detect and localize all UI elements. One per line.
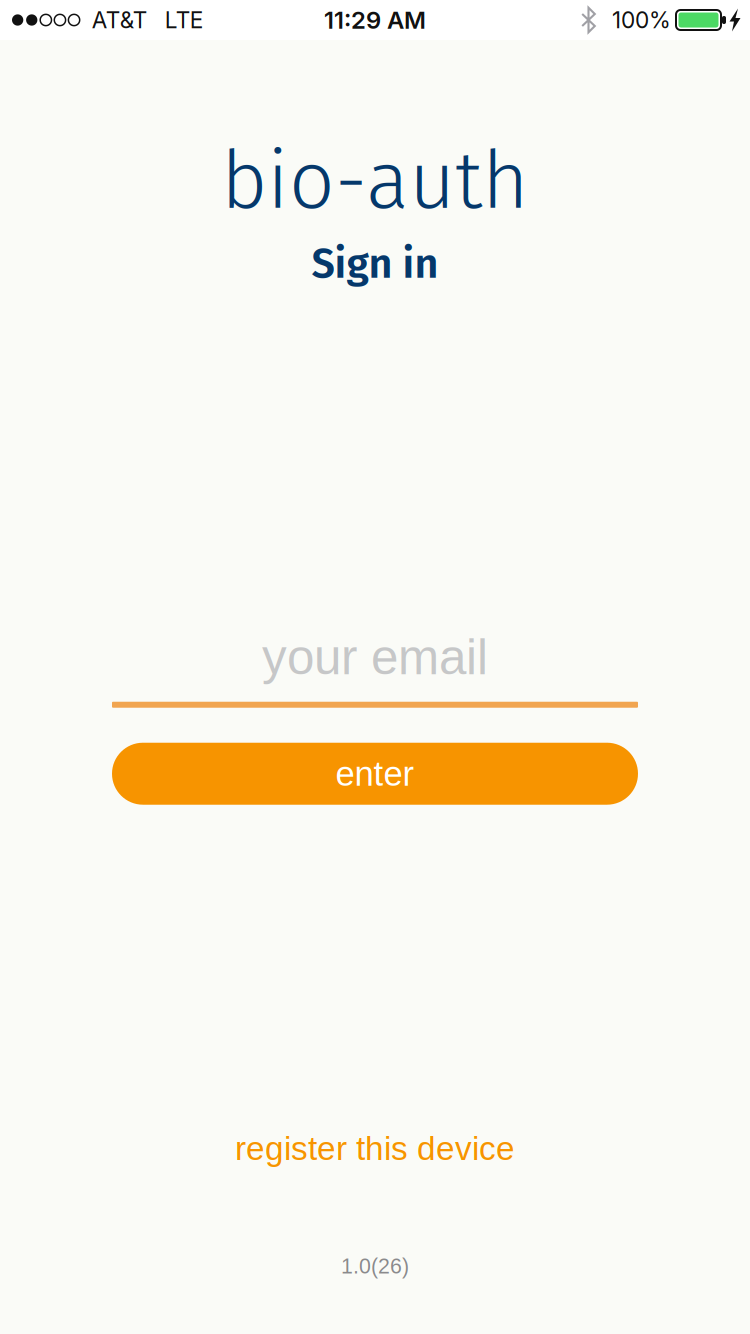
button[interactable]: register this device xyxy=(235,1130,515,1167)
staticText: your email xyxy=(262,630,488,685)
button[interactable]: enter xyxy=(112,743,638,805)
staticText: 1.0(26) xyxy=(341,1254,409,1278)
staticText: enter xyxy=(335,754,414,793)
staticText: 11:29 AM xyxy=(324,5,426,34)
staticText: AT&T xyxy=(92,6,147,34)
staticText: Sign in xyxy=(311,239,438,289)
staticText: bio-auth xyxy=(221,133,529,229)
staticText: 100% xyxy=(612,6,671,34)
staticText: register this device xyxy=(235,1130,515,1167)
staticText: LTE xyxy=(165,6,204,34)
